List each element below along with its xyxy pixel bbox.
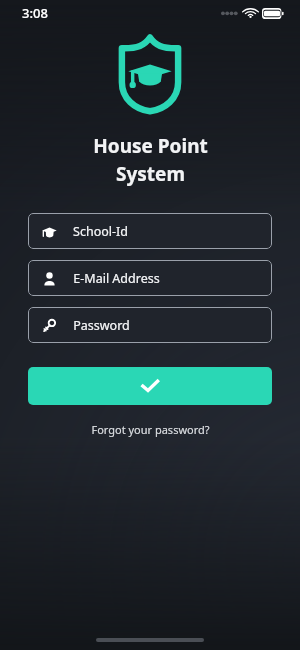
button[interactable]: School-Id [28,213,272,249]
staticText: Password [73,317,130,334]
button[interactable]: Forgot your password? [83,419,218,440]
button[interactable]: Submit [28,367,272,405]
button[interactable]: Password [28,307,272,343]
staticText: System [116,161,185,187]
button[interactable]: E-Mail Address [28,260,272,296]
staticText: Forgot your password? [91,422,210,437]
staticText: 3:08 [22,4,48,22]
staticText: House Point [93,133,208,159]
staticText: E-Mail Address [73,270,160,287]
staticText: School-Id [73,223,128,240]
